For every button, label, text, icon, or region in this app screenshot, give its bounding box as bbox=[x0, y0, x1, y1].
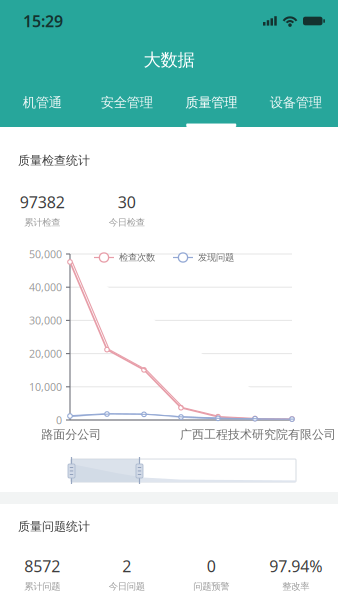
staticText: 路面分公司 bbox=[41, 427, 101, 442]
staticText: 8572 bbox=[24, 555, 60, 577]
staticText: 质量检查统计 bbox=[18, 153, 90, 168]
staticText: 2 bbox=[122, 555, 131, 577]
staticText: 50,000 bbox=[29, 247, 62, 261]
staticText: 发现问题 bbox=[198, 252, 234, 263]
staticText: 安全管理 bbox=[101, 94, 153, 111]
staticText: 大数据 bbox=[143, 49, 194, 71]
staticText: 机管通 bbox=[23, 94, 62, 111]
staticText: 97382 bbox=[20, 191, 65, 213]
staticText: 20,000 bbox=[29, 346, 62, 361]
staticText: 累计检查 bbox=[24, 217, 60, 228]
staticText: 问题预警 bbox=[193, 581, 229, 592]
staticText: 设备管理 bbox=[270, 94, 322, 111]
button[interactable]: 质量管理 bbox=[169, 80, 253, 127]
staticText: 检查次数 bbox=[119, 252, 155, 263]
button[interactable]: 机管通 bbox=[0, 80, 84, 127]
staticText: 今日检查 bbox=[109, 217, 145, 228]
staticText: 97.94% bbox=[269, 555, 322, 577]
button[interactable]: 安全管理 bbox=[84, 80, 169, 127]
staticText: 30,000 bbox=[29, 313, 62, 327]
staticText: 质量管理 bbox=[185, 94, 237, 111]
staticText: 累计问题 bbox=[24, 581, 60, 592]
staticText: 30 bbox=[118, 191, 136, 213]
staticText: 40,000 bbox=[29, 280, 62, 294]
staticText: 0 bbox=[207, 555, 216, 577]
staticText: 15:29 bbox=[23, 10, 63, 32]
button[interactable]: 设备管理 bbox=[253, 80, 338, 127]
staticText: 广西工程技术研究院有限公司 bbox=[180, 427, 336, 442]
staticText: 质量问题统计 bbox=[18, 519, 90, 534]
staticText: 10,000 bbox=[29, 380, 62, 394]
staticText: 0 bbox=[56, 413, 62, 427]
staticText: 整改率 bbox=[282, 581, 309, 592]
staticText: 今日问题 bbox=[109, 581, 145, 592]
